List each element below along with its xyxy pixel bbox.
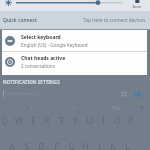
staticText: Quick connect [3,17,37,24]
staticText: Chat heads active [21,55,66,62]
staticText: I [102,115,105,125]
staticText: Q [1,115,8,125]
staticText: R [44,115,50,125]
staticText: Y [73,115,78,125]
staticText: NOTIFICATION SETTINGS [3,79,60,85]
button[interactable]: Chat heads active [2,52,147,72]
button[interactable]: The [95,104,137,111]
staticText: F [54,141,59,150]
staticText: English (US) - Google Keyboard [21,42,88,48]
staticText: W [15,115,23,125]
button[interactable]: Quick connect [0,11,150,29]
staticText: O [114,115,121,125]
button[interactable]: Stickers [120,90,128,98]
staticText: I [73,104,75,111]
staticText: K [110,141,116,150]
staticText: H [82,141,89,150]
staticText: D [38,141,45,150]
staticText: G [68,141,75,150]
staticText: S [24,141,29,150]
button[interactable]: More suggestions [139,104,145,110]
staticText: U [86,115,93,125]
staticText: E [31,115,36,125]
staticText: Tap here to connect devices [83,17,146,24]
button[interactable]: Select keyboard [2,30,147,51]
staticText: T [59,115,64,125]
staticText: Select keyboard [21,34,61,41]
button[interactable]: Like [134,90,142,98]
button[interactable]: NOTIFICATION SETTINGS [0,79,150,85]
staticText: I [31,104,33,111]
staticText: A [9,141,15,150]
staticText: The [111,104,121,111]
staticText: J [98,141,101,150]
staticText: P [128,115,134,125]
staticText: Auto [130,4,144,9]
staticText: L [125,141,130,150]
staticText: 2 conversations [21,63,55,69]
button[interactable]: Brightness [0,0,150,11]
